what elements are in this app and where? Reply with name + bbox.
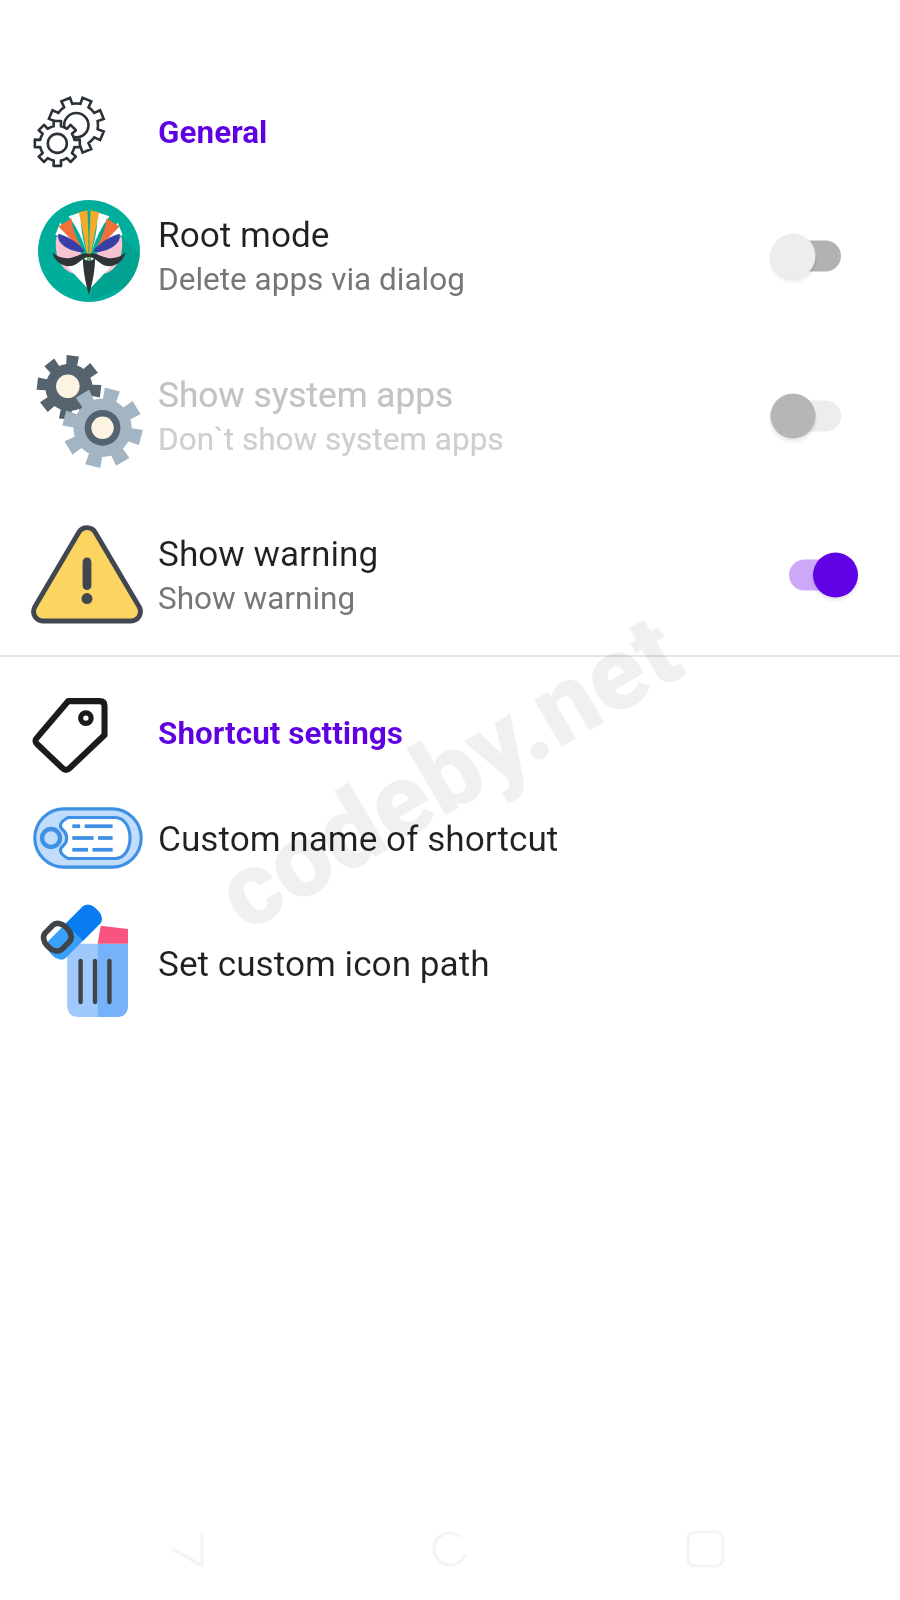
button[interactable]: Toggle [760,361,880,471]
staticText: Custom name of shortcut [158,818,559,859]
button[interactable]: Toggle [760,520,880,630]
staticText: Set custom icon path [158,943,490,984]
staticText: Show warning [158,533,379,574]
staticText: General [158,114,268,151]
staticText: Shortcut settings [158,715,404,752]
staticText: codeby.net [197,590,701,956]
staticText: Show warning [158,580,356,617]
button[interactable]: Show system apps [0,336,900,496]
button[interactable]: Show warning [0,495,900,655]
button[interactable]: Toggle [760,201,880,311]
staticText: Don`t show system apps [158,421,504,458]
button[interactable]: Shortcut settings [0,681,900,785]
button[interactable]: Set custom icon path [0,901,900,1025]
button[interactable]: Custom name of shortcut [0,776,900,900]
staticText: Root mode [158,214,330,255]
staticText: Delete apps via dialog [158,261,465,298]
button[interactable]: General [0,80,900,184]
staticText: Show system apps [158,374,454,415]
button[interactable]: Root mode [0,176,900,336]
